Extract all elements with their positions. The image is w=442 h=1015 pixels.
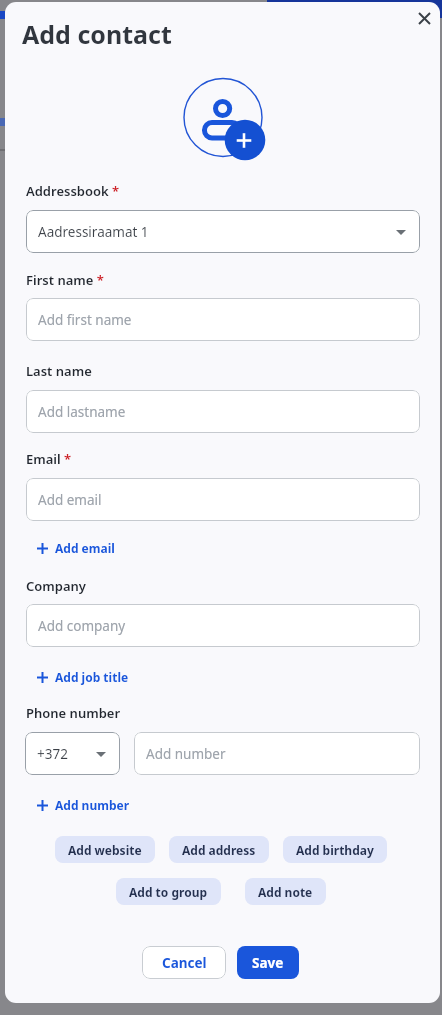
button[interactable]: Cancel bbox=[142, 946, 226, 979]
staticText: Add website bbox=[68, 842, 142, 858]
staticText: Last name bbox=[26, 362, 92, 380]
staticText: Company bbox=[26, 577, 86, 595]
button[interactable]: Add number bbox=[37, 797, 130, 813]
button[interactable]: Add address bbox=[169, 836, 269, 863]
button[interactable] bbox=[178, 73, 268, 163]
staticText: Add job title bbox=[55, 669, 129, 685]
staticText: Email * bbox=[26, 450, 72, 468]
staticText: Addressbook * bbox=[26, 182, 120, 200]
staticText: Add address bbox=[182, 842, 256, 858]
button[interactable]: +372 bbox=[25, 732, 120, 775]
staticText: Add contact bbox=[22, 17, 172, 51]
button[interactable] bbox=[406, 0, 442, 36]
staticText: First name * bbox=[26, 271, 104, 289]
staticText: Add birthday bbox=[296, 842, 374, 858]
button[interactable]: Aadressiraamat 1 bbox=[26, 210, 420, 253]
button[interactable]: Add to group bbox=[116, 878, 221, 905]
button[interactable]: Add email bbox=[37, 540, 115, 556]
staticText: +372 bbox=[37, 745, 68, 763]
staticText: Aadressiraamat 1 bbox=[38, 223, 149, 241]
button[interactable]: Add birthday bbox=[283, 836, 387, 863]
button[interactable]: Add note bbox=[245, 878, 326, 905]
staticText: Add number bbox=[146, 745, 226, 763]
staticText: Add email bbox=[55, 540, 115, 556]
staticText: Cancel bbox=[162, 954, 207, 972]
button[interactable]: Add number bbox=[134, 732, 420, 775]
button[interactable]: Add first name bbox=[26, 298, 420, 341]
button[interactable]: Add email bbox=[26, 478, 420, 521]
staticText: Add first name bbox=[38, 311, 132, 329]
button[interactable]: Add website bbox=[55, 836, 155, 863]
staticText: Add email bbox=[38, 491, 102, 509]
button[interactable]: Add job title bbox=[37, 669, 129, 685]
staticText: Add company bbox=[38, 617, 126, 635]
staticText: Save bbox=[252, 954, 284, 972]
staticText: Add note bbox=[258, 884, 313, 900]
button[interactable]: Add lastname bbox=[26, 390, 420, 433]
button[interactable]: Save bbox=[237, 946, 299, 979]
staticText: Add number bbox=[55, 797, 130, 813]
button[interactable]: Add company bbox=[26, 604, 420, 647]
staticText: Phone number bbox=[26, 704, 121, 722]
staticText: Add to group bbox=[129, 884, 208, 900]
staticText: Add lastname bbox=[38, 403, 126, 421]
